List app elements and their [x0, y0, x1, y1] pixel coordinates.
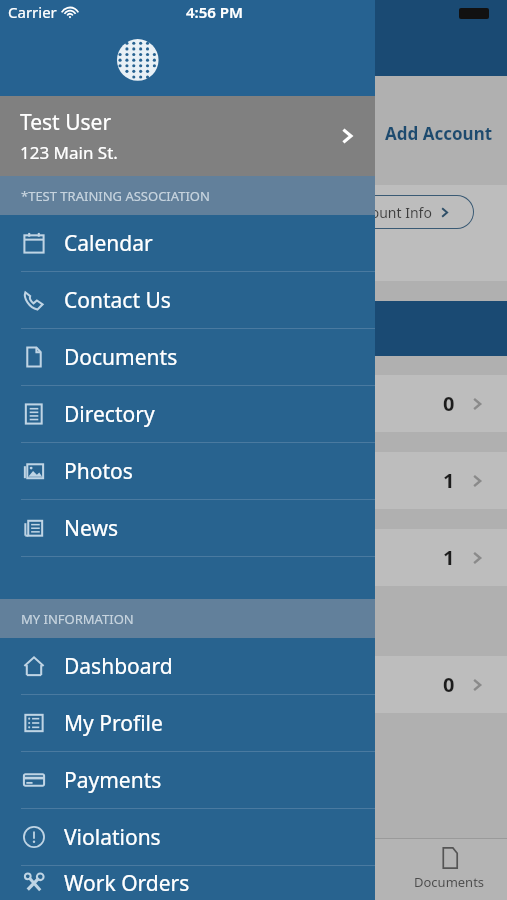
staticText: Photos: [64, 457, 133, 486]
staticText: Calendar: [64, 229, 153, 258]
button[interactable]: Payments: [0, 752, 375, 808]
staticText: Contact Us: [64, 286, 171, 315]
button[interactable]: Dashboard: [0, 638, 375, 694]
staticText: count Info: [364, 203, 432, 222]
staticText: News: [64, 514, 118, 543]
button[interactable]: Contact Us: [0, 272, 375, 328]
button[interactable]: 0: [0, 375, 507, 432]
staticText: Documents: [414, 873, 485, 891]
staticText: My Profile: [64, 709, 163, 738]
staticText: Dashboard: [64, 652, 173, 681]
staticText: Add Account: [385, 122, 493, 145]
staticText: Test User: [20, 108, 112, 137]
staticText: Violations: [64, 823, 161, 852]
button[interactable]: Documents: [0, 329, 375, 385]
staticText: 0: [443, 671, 455, 698]
staticText: 1: [443, 544, 455, 571]
staticText: 4:56 PM: [186, 2, 243, 22]
staticText: 123 Main St.: [20, 141, 118, 164]
button[interactable]: Calendar: [0, 215, 375, 271]
staticText: Work Orders: [64, 869, 190, 898]
staticText: MY INFORMATION: [21, 610, 134, 628]
button[interactable]: 1: [0, 529, 507, 586]
button[interactable]: Test User: [0, 96, 375, 176]
staticText: Directory: [64, 400, 155, 429]
button[interactable]: My Profile: [0, 695, 375, 751]
button[interactable]: Directory: [0, 386, 375, 442]
staticText: *TEST TRAINING ASSOCIATION: [21, 187, 210, 205]
staticText: Payments: [64, 766, 162, 795]
button[interactable]: 0: [0, 656, 507, 713]
button[interactable]: Work Orders: [0, 866, 375, 900]
button[interactable]: Documents: [414, 846, 485, 891]
staticText: 1: [443, 467, 455, 494]
button[interactable]: Photos: [0, 443, 375, 499]
button[interactable]: News: [0, 500, 375, 556]
button[interactable]: Violations: [0, 809, 375, 865]
staticText: 0: [443, 390, 455, 417]
button[interactable]: 1: [0, 452, 507, 509]
staticText: Carrier: [8, 2, 57, 22]
staticText: Documents: [64, 343, 178, 372]
